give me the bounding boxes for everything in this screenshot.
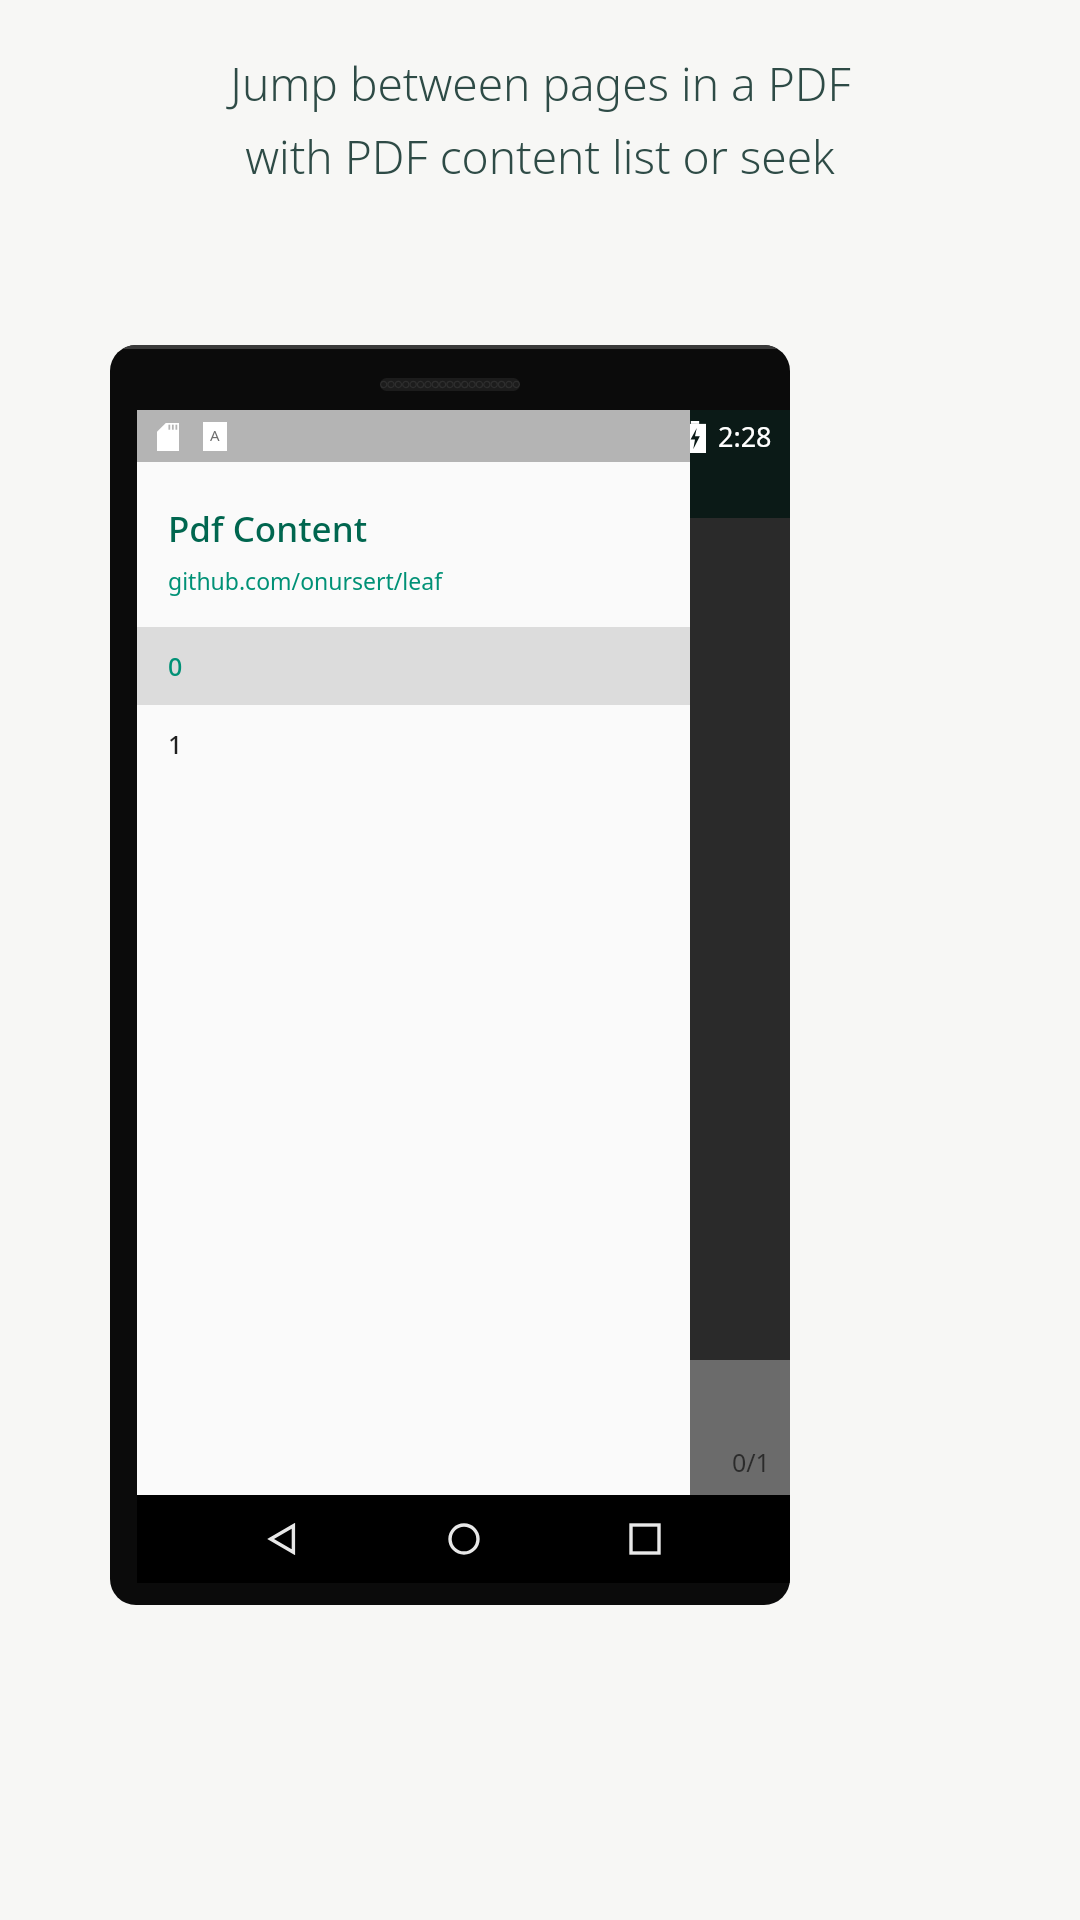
button[interactable]: 0 [137, 627, 690, 705]
button[interactable]: Recent apps [609, 1503, 681, 1575]
staticText: 1 [168, 727, 183, 761]
staticText: 0/1 [732, 1445, 770, 1479]
staticText: t nulla feugiat facilisis sed [437, 562, 619, 580]
staticText: sus libero, ac consequat [437, 580, 606, 598]
button[interactable]: Home [428, 1503, 500, 1575]
staticText: Pdf Content [168, 505, 368, 553]
staticText: with PDF content list or seek [245, 125, 835, 188]
staticText: 2:28 [718, 418, 772, 455]
staticText: Jump between pages in a PDF [230, 52, 851, 115]
button[interactable]: 0/1 [137, 1360, 790, 1495]
staticText: github.com/onursert/leaf [168, 565, 443, 596]
staticText: A [210, 425, 220, 445]
button[interactable]: Back [246, 1503, 318, 1575]
staticText: 0 [168, 649, 183, 683]
button[interactable]: 1 [137, 705, 690, 783]
staticText: auris. Nam in est odio. Sed [437, 616, 625, 634]
